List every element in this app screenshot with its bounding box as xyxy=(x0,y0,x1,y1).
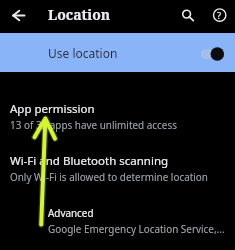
button[interactable]: Navigate up xyxy=(6,3,31,28)
staticText: Google Emergency Location Service,... xyxy=(48,222,225,236)
button[interactable]: Wi-Fi and Bluetooth scanning xyxy=(0,147,235,181)
button[interactable]: Help and feedback xyxy=(208,5,231,28)
staticText: Use location xyxy=(48,45,118,61)
button[interactable]: App permission xyxy=(0,95,235,129)
staticText: Advanced xyxy=(48,206,94,219)
staticText: Only Wi-Fi is allowed to determine locat… xyxy=(10,170,208,184)
staticText: App permission xyxy=(10,101,95,117)
staticText: 13 of 33 apps have unlimited access xyxy=(10,118,177,132)
button[interactable]: Use location xyxy=(0,33,235,72)
staticText: ? xyxy=(217,9,222,22)
staticText: Location xyxy=(48,5,111,24)
button[interactable]: Search xyxy=(174,5,197,28)
button[interactable]: Advanced xyxy=(0,199,235,233)
staticText: Wi-Fi and Bluetooth scanning xyxy=(10,153,169,169)
